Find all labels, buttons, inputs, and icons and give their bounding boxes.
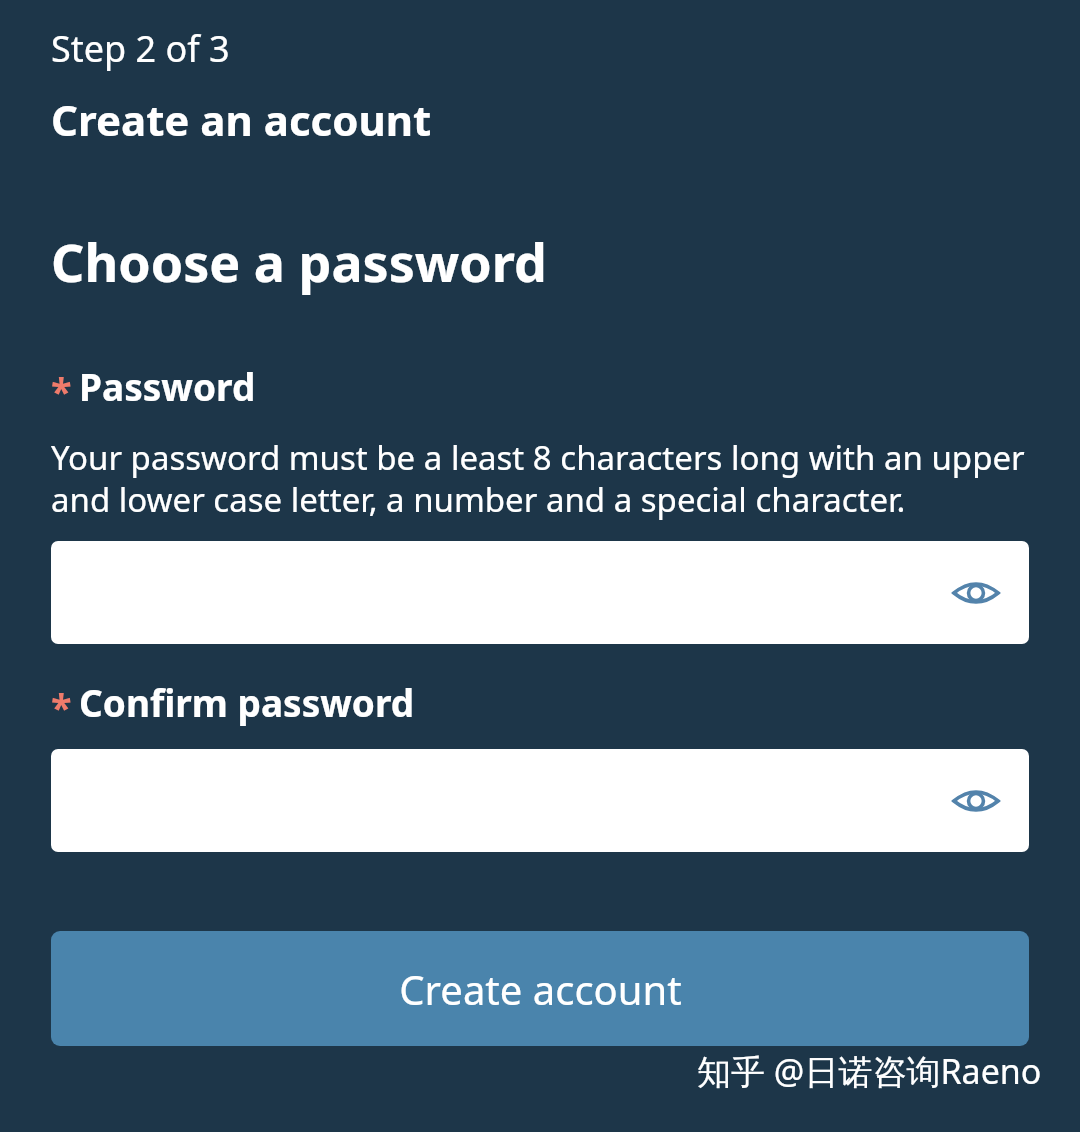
- staticText: Confirm password: [79, 677, 415, 727]
- staticText: Your password must be a least 8 characte…: [51, 435, 1029, 522]
- button[interactable]: Show confirm password: [947, 772, 1005, 830]
- staticText: 知乎 @日诺咨询Raeno: [697, 1048, 1042, 1094]
- button[interactable]: Show password: [51, 541, 1029, 644]
- button[interactable]: Show confirm password: [51, 749, 1029, 852]
- staticText: Create an account: [51, 91, 432, 148]
- staticText: Create account: [399, 962, 682, 1016]
- staticText: Step 2 of 3: [51, 24, 230, 73]
- staticText: *: [51, 681, 72, 733]
- staticText: *: [51, 365, 72, 417]
- staticText: Choose a password: [51, 226, 547, 297]
- button[interactable]: Show password: [947, 564, 1005, 622]
- button[interactable]: Create account: [51, 931, 1029, 1046]
- staticText: Password: [79, 361, 256, 411]
